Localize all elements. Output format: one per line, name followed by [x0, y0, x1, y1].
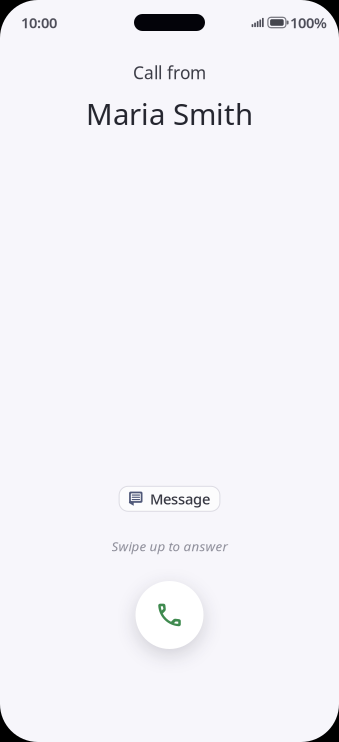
staticText: 10:00	[21, 13, 57, 32]
staticText: Call from	[133, 61, 206, 84]
staticText: Swipe up to answer	[111, 537, 227, 555]
button[interactable]: Message	[119, 486, 220, 511]
button[interactable]: Answer call	[135, 581, 203, 649]
staticText: 100%	[290, 13, 327, 32]
staticText: Message	[150, 489, 210, 509]
staticText: Maria Smith	[86, 94, 253, 133]
